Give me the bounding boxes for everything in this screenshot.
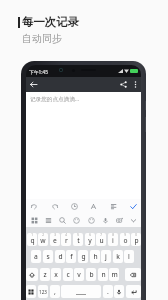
staticText: 8 [112, 233, 114, 237]
button[interactable]: 123 [38, 285, 48, 298]
button[interactable]: , [50, 285, 60, 298]
staticText: h [93, 252, 98, 261]
button[interactable]: 6 [85, 233, 95, 246]
staticText: z [43, 270, 47, 279]
staticText: g [81, 252, 86, 261]
button[interactable]: f [66, 250, 76, 263]
button[interactable]: Space [61, 285, 101, 298]
button[interactable]: 2 [38, 233, 48, 246]
button[interactable]: d [55, 250, 65, 263]
staticText: e [53, 236, 57, 245]
staticText: 123 [39, 289, 47, 295]
staticText: k [116, 252, 120, 261]
staticText: 7 [100, 233, 102, 237]
staticText: 1 [31, 233, 33, 237]
staticText: b [89, 270, 94, 279]
button[interactable]: Align [107, 200, 119, 212]
staticText: u [99, 236, 104, 245]
button[interactable]: v [74, 268, 84, 281]
button[interactable]: Symbols [26, 285, 36, 298]
staticText: i [112, 236, 114, 245]
button[interactable]: 3 [50, 233, 60, 246]
staticText: 3 [54, 233, 56, 237]
staticText: y [88, 236, 92, 245]
button[interactable]: . [103, 285, 113, 298]
button[interactable]: Camera [113, 214, 125, 226]
button[interactable]: 0 [131, 233, 141, 246]
staticText: 下午1:45 [29, 69, 49, 76]
button[interactable]: x [51, 268, 61, 281]
button[interactable]: 5 [73, 233, 83, 246]
button[interactable]: c [63, 268, 73, 281]
button[interactable]: Text style [87, 200, 99, 212]
staticText: 自动同步 [22, 32, 62, 45]
button[interactable]: g [78, 250, 88, 263]
button[interactable]: Search [56, 214, 68, 226]
staticText: n [101, 270, 106, 279]
staticText: w [40, 236, 46, 245]
staticText: m [111, 270, 118, 279]
staticText: 2 [42, 233, 44, 237]
button[interactable]: 9 [120, 233, 130, 246]
button[interactable]: List [42, 214, 54, 226]
button[interactable]: Enter [126, 285, 141, 298]
button[interactable]: More options [130, 79, 141, 90]
staticText: t [77, 236, 80, 245]
button[interactable]: s [43, 250, 53, 263]
button[interactable]: Share [118, 79, 129, 90]
button[interactable]: Emoji [70, 214, 82, 226]
button[interactable]: 7 [96, 233, 106, 246]
button[interactable]: h [90, 250, 100, 263]
staticText: a [34, 252, 38, 261]
button[interactable]: l [124, 250, 134, 263]
button[interactable]: j [101, 250, 111, 263]
button[interactable]: 4 [61, 233, 71, 246]
staticText: s [46, 252, 50, 261]
button[interactable]: Back [28, 79, 39, 90]
staticText: v [77, 270, 81, 279]
button[interactable]: k [113, 250, 123, 263]
staticText: 5 [77, 233, 79, 237]
button[interactable]: 1 [27, 233, 37, 246]
staticText: j [105, 252, 107, 261]
staticText: 6 [89, 233, 91, 237]
staticText: o [123, 236, 128, 245]
staticText: q [30, 236, 35, 245]
button[interactable]: Stickers [85, 214, 97, 226]
button[interactable]: m [109, 268, 119, 281]
staticText: p [134, 236, 139, 245]
button[interactable]: Backspace [125, 268, 141, 281]
button[interactable]: History [68, 200, 80, 212]
staticText: 记录您的点点滴滴... [30, 95, 80, 103]
button[interactable]: Undo [28, 200, 40, 212]
staticText: 9 [124, 233, 126, 237]
staticText: l [128, 252, 130, 261]
staticText: r [65, 236, 68, 245]
staticText: . [107, 287, 109, 296]
button[interactable]: Collapse [127, 214, 139, 226]
button[interactable]: n [98, 268, 108, 281]
staticText: d [58, 252, 63, 261]
button[interactable]: Voice input [114, 285, 124, 298]
staticText: 0 [135, 233, 137, 237]
button[interactable]: Shift [26, 268, 38, 281]
button[interactable]: a [31, 250, 41, 263]
staticText: c [66, 270, 70, 279]
button[interactable]: z [40, 268, 50, 281]
button[interactable]: Redo [48, 200, 60, 212]
staticText: 4 [65, 233, 67, 237]
staticText: f [70, 252, 73, 261]
staticText: x [54, 270, 58, 279]
staticText: , [54, 287, 56, 296]
staticText: 每一次记录 [22, 15, 79, 29]
button[interactable]: Voice [99, 214, 111, 226]
button[interactable]: b [86, 268, 96, 281]
button[interactable]: Grid [28, 214, 40, 226]
button[interactable]: 8 [108, 233, 118, 246]
button[interactable]: Done [127, 200, 139, 212]
